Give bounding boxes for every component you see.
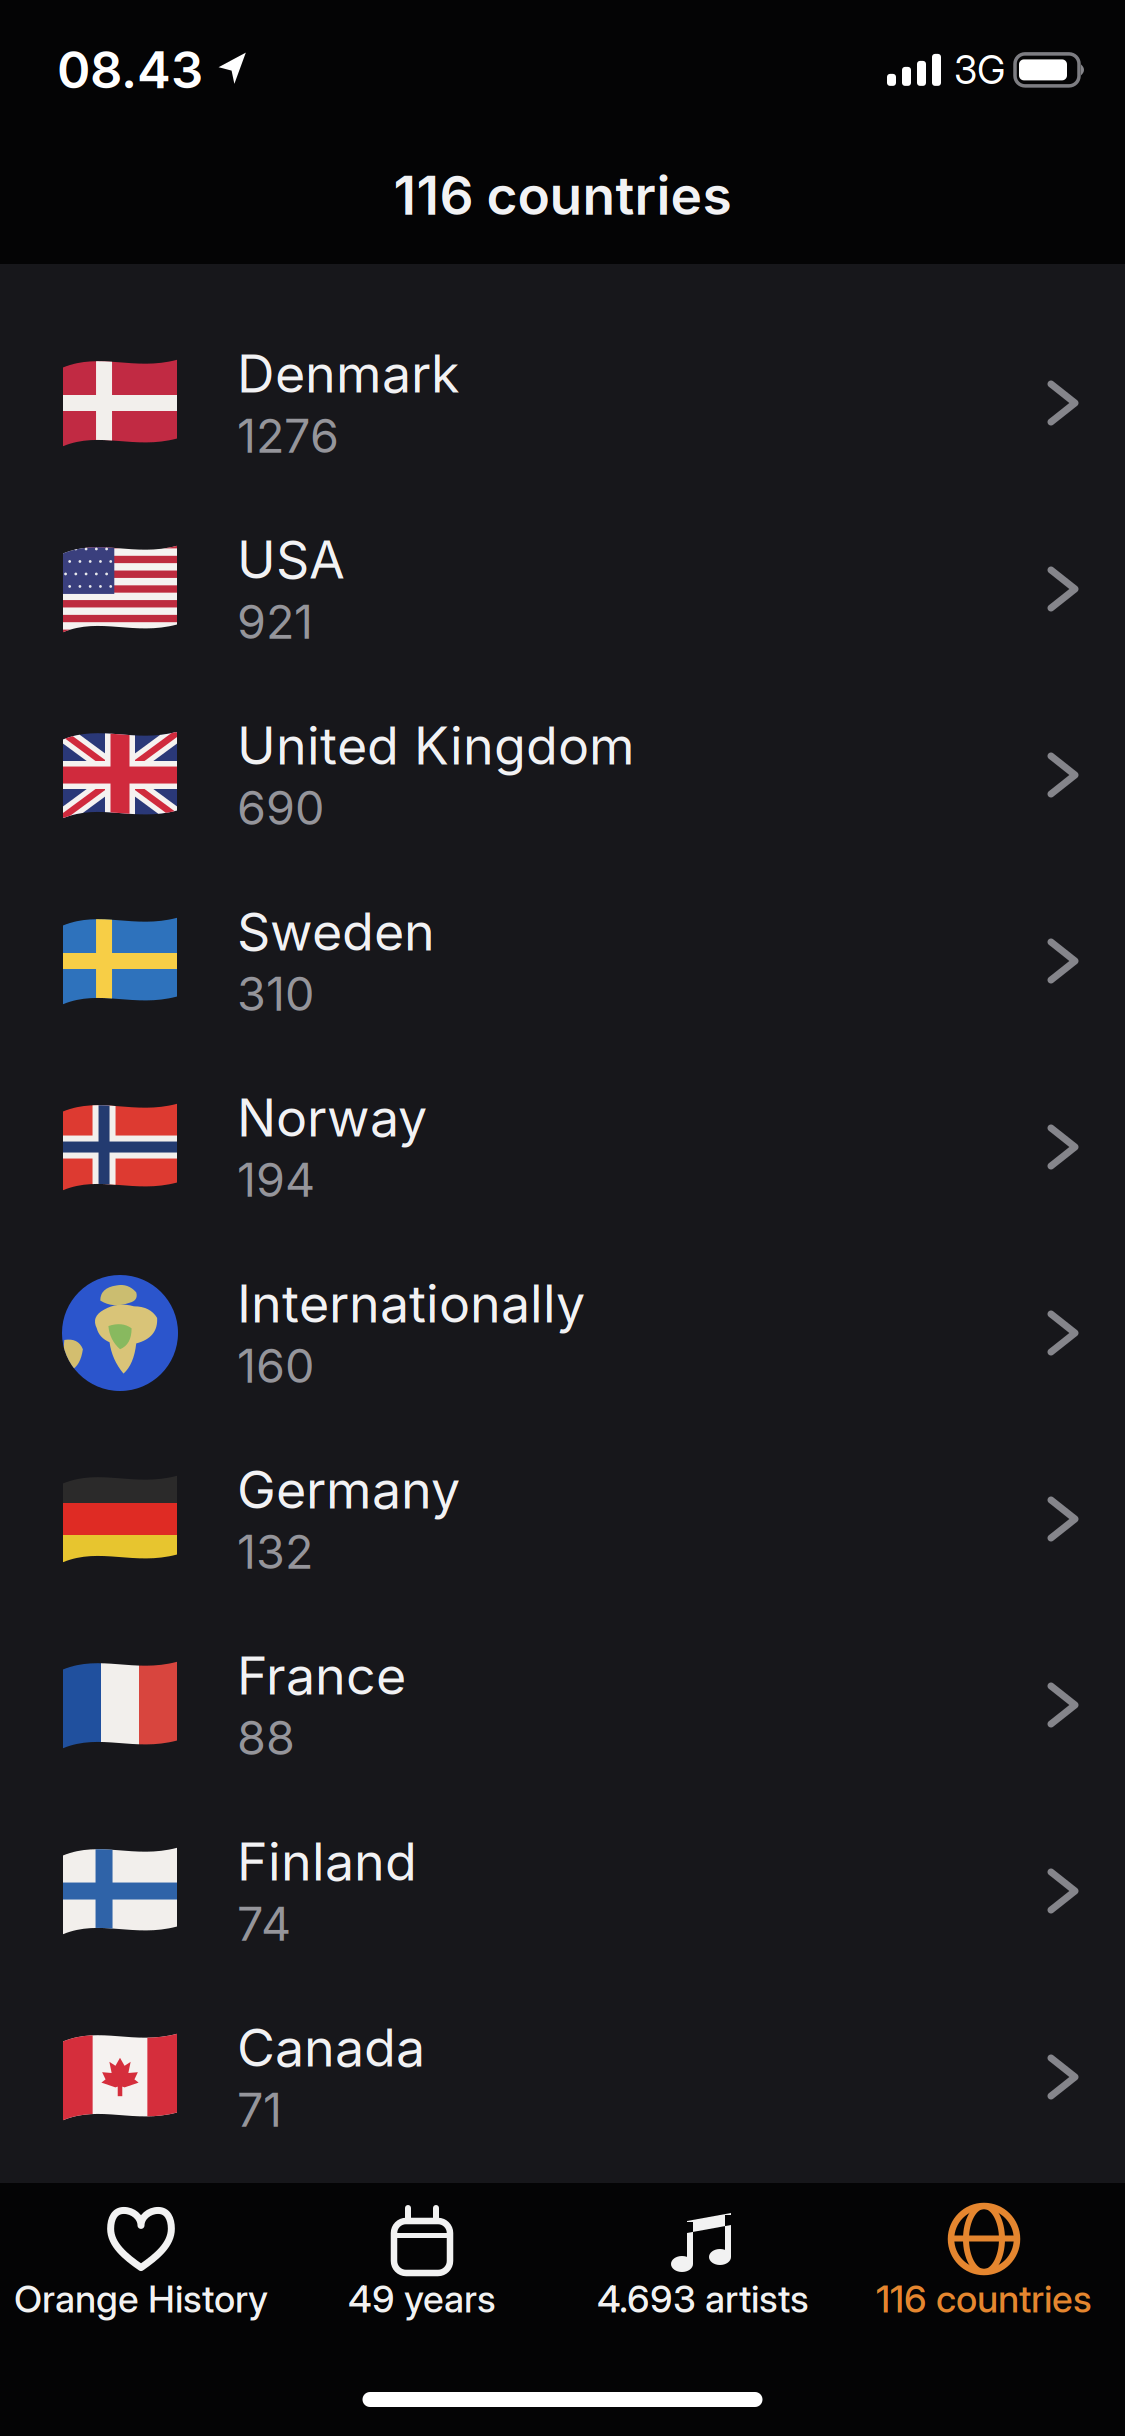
button[interactable]: 4.693 artists [562, 2205, 843, 2321]
staticText: 1276 [237, 408, 339, 463]
button[interactable]: Germany [0, 1426, 1125, 1612]
button[interactable]: Internationally [0, 1240, 1125, 1426]
button[interactable]: France [0, 1612, 1125, 1798]
staticText: France [237, 1645, 406, 1706]
staticText: Norway [237, 1087, 427, 1148]
staticText: 49 years [348, 2277, 496, 2321]
button[interactable]: Finland [0, 1798, 1125, 1984]
button[interactable]: USA [0, 496, 1125, 682]
staticText: 08.43 [57, 40, 203, 100]
staticText: 690 [237, 780, 324, 835]
button[interactable]: 49 years [281, 2205, 562, 2321]
button[interactable]: 116 countries [843, 2205, 1124, 2321]
staticText: United Kingdom [237, 715, 635, 776]
staticText: USA [237, 529, 345, 590]
staticText: Denmark [237, 343, 460, 404]
button[interactable]: Norway [0, 1054, 1125, 1240]
button[interactable]: Denmark [0, 310, 1125, 496]
staticText: 921 [237, 594, 313, 649]
staticText: 88 [237, 1710, 295, 1765]
button[interactable]: United Kingdom [0, 682, 1125, 868]
staticText: 3G [954, 47, 1005, 93]
staticText: Canada [237, 2017, 425, 2078]
staticText: Finland [237, 1831, 417, 1892]
staticText: Orange History [14, 2277, 268, 2321]
staticText: 74 [237, 1896, 291, 1951]
staticText: 116 countries [876, 2277, 1092, 2321]
staticText: Sweden [237, 901, 435, 962]
staticText: 160 [237, 1338, 314, 1393]
staticText: 71 [237, 2082, 282, 2137]
staticText: 194 [237, 1152, 315, 1207]
staticText: 132 [237, 1524, 313, 1579]
button[interactable]: Canada [0, 1984, 1125, 2170]
staticText: 310 [237, 966, 314, 1021]
staticText: 4.693 artists [597, 2277, 809, 2321]
staticText: Internationally [237, 1273, 585, 1334]
button[interactable]: Sweden [0, 868, 1125, 1054]
staticText: Germany [237, 1459, 460, 1520]
staticText: 116 countries [393, 164, 731, 227]
button[interactable]: Orange History [0, 2205, 281, 2321]
